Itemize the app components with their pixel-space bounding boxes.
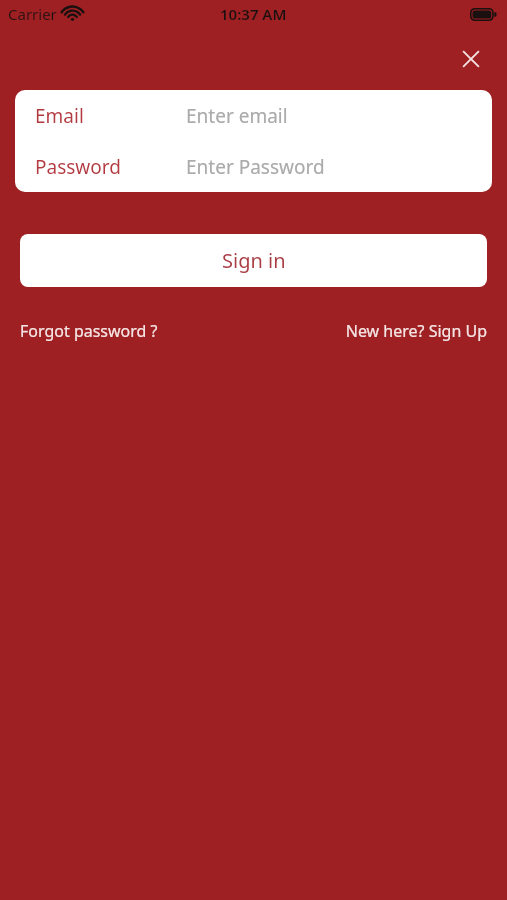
staticText: Sign in (222, 247, 286, 274)
button[interactable]: New here? Sign Up (345, 320, 487, 342)
button[interactable]: Close (457, 45, 485, 73)
staticText: New here? Sign Up (345, 320, 487, 342)
button[interactable]: Sign in (20, 234, 487, 287)
button[interactable]: Email (15, 90, 492, 141)
staticText: 10:37 AM (220, 4, 287, 24)
button[interactable]: Forgot password ? (20, 320, 158, 342)
staticText: Carrier (8, 4, 57, 24)
staticText: Password (35, 154, 121, 180)
staticText: Enter Password (186, 154, 325, 180)
staticText: Enter email (186, 103, 288, 129)
staticText: Email (35, 103, 84, 129)
button[interactable]: Password (15, 141, 492, 192)
staticText: Forgot password ? (20, 320, 158, 342)
